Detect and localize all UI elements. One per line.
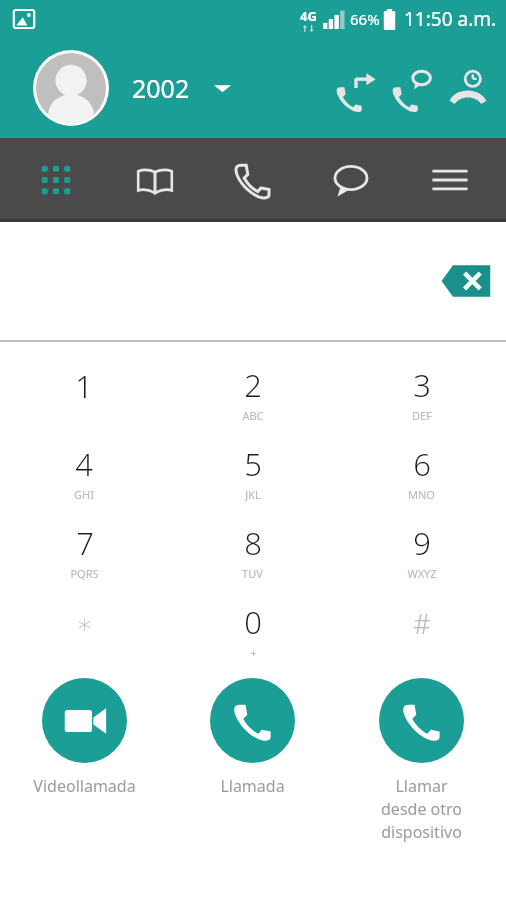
staticText: 3 (413, 364, 431, 406)
staticText: + (250, 645, 257, 660)
staticText: 4 (75, 443, 93, 485)
button[interactable]: Video call (0, 678, 168, 797)
button[interactable]: Profile (33, 50, 109, 126)
button[interactable]: Call from another device (337, 678, 506, 843)
staticText: 2 (244, 364, 262, 406)
staticText: Videollamada (33, 775, 136, 797)
staticText: Llamada (220, 775, 285, 797)
button[interactable]: Backspace (440, 259, 494, 303)
button[interactable]: 2002 (132, 71, 231, 105)
staticText: # (413, 605, 431, 642)
button[interactable]: # (337, 591, 506, 670)
staticText: ABC (242, 408, 264, 423)
button[interactable]: 7 (0, 512, 168, 591)
staticText: JKL (245, 487, 261, 502)
staticText: GHI (74, 487, 94, 502)
staticText: 0 (244, 601, 262, 643)
button[interactable]: 3 (337, 354, 506, 433)
staticText: MNO (408, 487, 435, 502)
staticText: 11:50 a.m. (404, 6, 497, 32)
staticText: 6 (413, 443, 431, 485)
button[interactable]: Recent calls (440, 60, 496, 116)
button[interactable]: 5 (168, 433, 337, 512)
staticText: 9 (413, 522, 431, 564)
button[interactable]: 1 (0, 354, 168, 433)
button[interactable]: 4 (0, 433, 168, 512)
button[interactable]: 6 (337, 433, 506, 512)
staticText: DEF (412, 408, 432, 423)
staticText: 7 (76, 522, 94, 564)
button[interactable]: Keypad (14, 138, 98, 222)
button[interactable]: Call log (211, 138, 295, 222)
button[interactable]: Call forward (328, 60, 384, 116)
button[interactable]: Call (168, 678, 337, 797)
staticText: 5 (244, 443, 262, 485)
button[interactable]: 8 (168, 512, 337, 591)
staticText: 1 (75, 365, 93, 407)
staticText: 66% (350, 9, 380, 29)
button[interactable]: 2 (168, 354, 337, 433)
button[interactable]: Contacts (113, 138, 197, 222)
staticText: PQRS (70, 566, 99, 581)
button[interactable]: Messages (309, 138, 393, 222)
button[interactable]: More options (408, 138, 492, 222)
staticText: WXYZ (407, 566, 437, 581)
button[interactable]: 9 (337, 512, 506, 591)
staticText: Llamar desde otro dispositivo (381, 775, 462, 843)
staticText: 8 (244, 522, 262, 564)
staticText: ∗ (76, 608, 93, 639)
staticText: TUV (242, 566, 263, 581)
staticText: 4G (300, 7, 317, 25)
staticText: 2002 (132, 71, 190, 105)
button[interactable]: 0 (168, 591, 337, 670)
button[interactable]: Call with message (384, 60, 440, 116)
